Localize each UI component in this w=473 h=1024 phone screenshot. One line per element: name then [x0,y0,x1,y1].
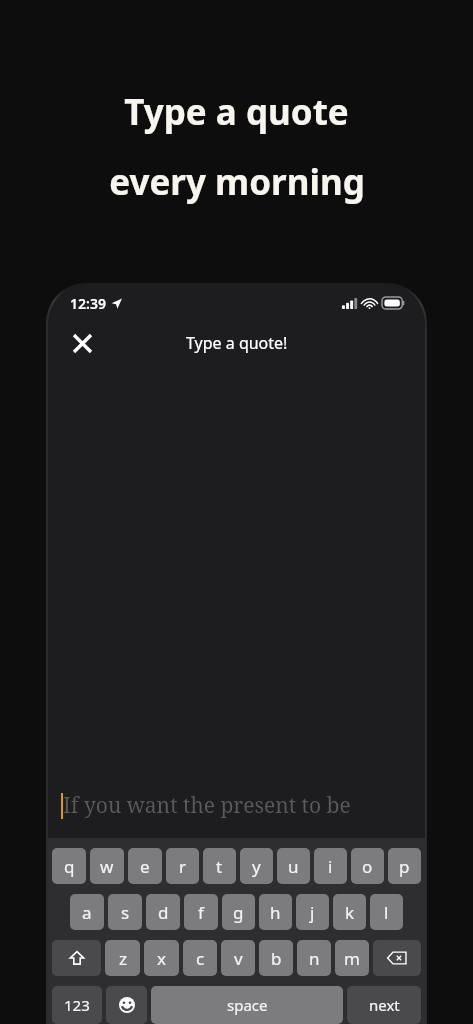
button[interactable]: a [70,894,104,930]
button[interactable]: j [296,894,329,930]
button[interactable]: h [259,894,292,930]
staticText: a [82,901,92,924]
button[interactable]: f [184,894,218,930]
staticText: x [157,947,166,970]
staticText: k [345,901,355,924]
staticText: e [140,855,150,878]
staticText: r [179,855,187,878]
staticText: c [196,947,205,970]
staticText: i [328,855,333,878]
button[interactable]: space [151,986,343,1024]
staticText: s [121,901,130,924]
button[interactable]: Emoji [106,986,147,1024]
staticText: v [234,947,243,970]
button[interactable]: v [221,940,255,976]
staticText: t [216,855,223,878]
staticText: z [119,947,127,970]
staticText: b [271,947,282,970]
button[interactable]: u [277,848,310,884]
button[interactable]: m [335,940,369,976]
staticText: n [309,947,320,970]
button[interactable]: o [351,848,384,884]
staticText: Type a quote [124,88,349,136]
button[interactable]: i [314,848,347,884]
button[interactable]: Shift [52,940,101,976]
staticText: j [310,901,315,924]
button[interactable]: d [146,894,180,930]
button[interactable]: w [90,848,124,884]
staticText: l [384,901,389,924]
button[interactable]: Backspace [373,940,421,976]
staticText: 12:39 [70,294,106,313]
staticText: 123 [64,995,90,1015]
button[interactable]: e [128,848,162,884]
button[interactable]: q [52,848,86,884]
staticText: If you want the present to be [63,791,351,820]
button[interactable]: r [166,848,199,884]
staticText: space [227,995,268,1015]
button[interactable]: z [105,940,140,976]
button[interactable]: y [240,848,273,884]
staticText: o [362,855,373,878]
staticText: h [270,901,281,924]
staticText: g [233,901,244,924]
button[interactable]: next [347,986,421,1024]
staticText: d [158,901,169,924]
button[interactable]: n [297,940,331,976]
staticText: f [198,901,204,924]
button[interactable]: p [388,848,421,884]
button[interactable]: g [222,894,255,930]
button[interactable]: Close [62,323,102,363]
staticText: every morning [109,158,365,206]
staticText: y [252,855,261,878]
button[interactable]: t [203,848,236,884]
button[interactable]: x [144,940,179,976]
staticText: p [399,855,410,878]
button[interactable]: l [370,894,403,930]
staticText: q [64,855,75,878]
staticText: next [369,995,400,1015]
button[interactable]: b [259,940,293,976]
staticText: w [100,855,114,878]
button[interactable]: 123 [52,986,102,1024]
staticText: Type a quote! [186,332,288,354]
staticText: u [288,855,299,878]
button[interactable]: c [183,940,217,976]
staticText: m [344,947,360,970]
button[interactable]: k [333,894,366,930]
button[interactable]: s [108,894,142,930]
